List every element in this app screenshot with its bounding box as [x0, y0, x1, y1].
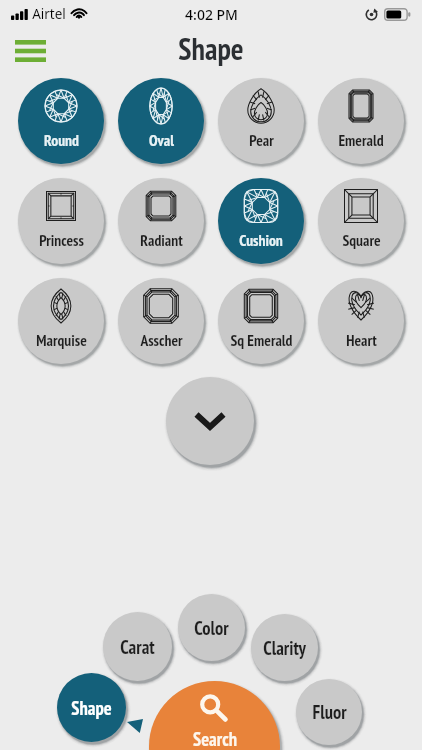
staticText: Emerald — [338, 130, 384, 150]
staticText: Heart — [346, 330, 377, 350]
button[interactable]: Princess — [18, 178, 104, 264]
staticText: Asscher — [140, 330, 183, 350]
staticText: Pear — [249, 130, 274, 150]
button[interactable]: Sq Emerald — [218, 278, 304, 364]
button[interactable]: Carat — [103, 612, 172, 681]
staticText: Oval — [149, 130, 174, 150]
button[interactable]: Square — [318, 178, 404, 264]
button[interactable]: Shape — [57, 673, 126, 742]
button[interactable]: Oval — [118, 78, 204, 164]
staticText: Round — [44, 130, 79, 150]
button[interactable]: Round — [18, 78, 104, 164]
staticText: Clarity — [263, 636, 306, 660]
button[interactable]: Asscher — [118, 278, 204, 364]
staticText: Sq Emerald — [230, 330, 293, 350]
staticText: Color — [194, 616, 229, 640]
button[interactable]: Cushion — [218, 178, 304, 264]
staticText: Airtel — [32, 5, 66, 23]
button[interactable]: Clarity — [251, 614, 318, 681]
staticText: Marquise — [36, 330, 87, 350]
staticText: Radiant — [140, 230, 183, 250]
staticText: Princess — [39, 230, 84, 250]
button[interactable]: Heart — [318, 278, 404, 364]
button[interactable]: Fluor — [296, 679, 362, 745]
staticText: Shape — [71, 696, 112, 720]
button[interactable]: Radiant — [118, 178, 204, 264]
button[interactable]: Menu — [8, 29, 52, 73]
button[interactable]: Show more shapes — [166, 377, 254, 465]
button[interactable]: Marquise — [18, 278, 104, 364]
staticText: Shape — [178, 29, 244, 68]
button[interactable]: Pear — [218, 78, 304, 164]
staticText: Search — [193, 727, 237, 750]
button[interactable]: Emerald — [318, 78, 404, 164]
button[interactable]: Search — [149, 681, 280, 750]
staticText: Cushion — [239, 230, 283, 250]
staticText: Fluor — [312, 700, 347, 724]
button[interactable]: Color — [178, 594, 245, 661]
staticText: 4:02 PM — [185, 5, 238, 24]
staticText: Square — [342, 230, 381, 250]
staticText: Carat — [120, 635, 155, 659]
